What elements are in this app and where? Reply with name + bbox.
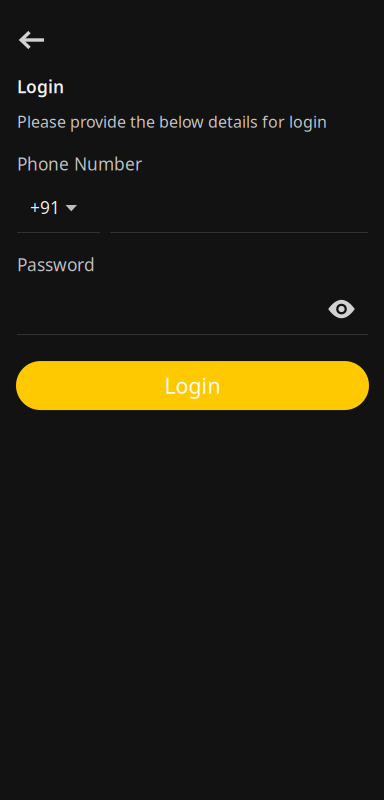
button[interactable]: Login xyxy=(16,361,369,410)
staticText: Phone Number xyxy=(17,152,142,175)
button[interactable]: Back xyxy=(0,0,59,61)
staticText: Password xyxy=(17,253,95,276)
staticText: Login xyxy=(17,75,64,98)
button[interactable]: +91 xyxy=(0,193,114,223)
staticText: Login xyxy=(164,371,220,400)
staticText: Please provide the below details for log… xyxy=(17,111,327,132)
button[interactable]: Show password xyxy=(322,293,361,325)
staticText: +91 xyxy=(30,196,60,219)
